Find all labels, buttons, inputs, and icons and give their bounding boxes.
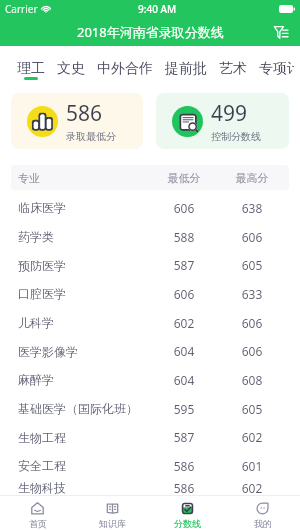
button[interactable]: 临床医学 [11, 193, 289, 222]
staticText: 604 [150, 372, 218, 388]
staticText: 638 [218, 200, 286, 216]
staticText: Carrier [5, 2, 38, 16]
button[interactable]: 提前批 [165, 46, 207, 82]
staticText: 提前批 [165, 60, 207, 78]
staticText: 儿科学 [18, 315, 150, 330]
staticText: 602 [150, 315, 218, 331]
button[interactable]: 生物科技 [11, 480, 289, 495]
staticText: 知识库 [99, 518, 126, 529]
staticText: 633 [218, 286, 286, 302]
staticText: 586 [150, 480, 218, 495]
button[interactable]: 我的 [225, 496, 300, 530]
staticText: 基础医学（国际化班） [18, 401, 150, 416]
staticText: 首页 [29, 518, 47, 529]
button[interactable]: 医学影像学 [11, 337, 289, 365]
button[interactable]: 预防医学 [11, 251, 289, 279]
staticText: 控制分数线 [211, 130, 261, 143]
button[interactable]: 生物工程 [11, 423, 289, 451]
button[interactable]: 基础医学（国际化班） [11, 394, 289, 423]
staticText: 预防医学 [18, 258, 150, 273]
button[interactable]: 理工 [17, 46, 45, 82]
button[interactable]: 儿科学 [11, 308, 289, 337]
staticText: 麻醉学 [18, 372, 150, 387]
staticText: 录取最低分 [66, 130, 116, 143]
staticText: 我的 [254, 518, 272, 529]
staticText: 生物科技 [18, 480, 150, 495]
button[interactable]: 文史 [57, 46, 85, 82]
staticText: 最低分 [150, 171, 218, 185]
staticText: 安全工程 [18, 458, 150, 473]
staticText: 2018年河南省录取分数线 [77, 23, 224, 41]
button[interactable]: 药学类 [11, 222, 289, 251]
staticText: 606 [218, 315, 286, 331]
staticText: 最高分 [218, 171, 286, 185]
staticText: 586 [150, 458, 218, 474]
staticText: 605 [218, 401, 286, 417]
staticText: 606 [218, 229, 286, 245]
button[interactable]: 安全工程 [11, 451, 289, 480]
staticText: 587 [150, 257, 218, 273]
staticText: 602 [218, 480, 286, 495]
staticText: 587 [150, 429, 218, 445]
staticText: 605 [218, 257, 286, 273]
staticText: 499 [211, 99, 248, 128]
staticText: 中外合作 [97, 60, 153, 78]
staticText: 604 [150, 343, 218, 359]
staticText: 606 [150, 200, 218, 216]
button[interactable]: Filter [270, 21, 292, 43]
button[interactable]: 麻醉学 [11, 365, 289, 394]
staticText: 602 [218, 429, 286, 445]
staticText: 586 [66, 99, 103, 128]
staticText: 588 [150, 229, 218, 245]
button[interactable]: 艺术 [219, 46, 247, 82]
staticText: 艺术 [219, 60, 247, 78]
staticText: 专业 [18, 171, 150, 185]
staticText: 临床医学 [18, 200, 150, 215]
button[interactable]: 首页 [0, 496, 75, 530]
button[interactable]: 499 [156, 93, 289, 149]
button[interactable]: 586 [11, 93, 143, 149]
staticText: 608 [218, 372, 286, 388]
staticText: 口腔医学 [18, 286, 150, 301]
button[interactable]: 知识库 [75, 496, 150, 530]
staticText: 医学影像学 [18, 344, 150, 359]
staticText: 595 [150, 401, 218, 417]
staticText: 理工 [17, 60, 45, 78]
staticText: 9:40 AM [138, 2, 177, 16]
staticText: 文史 [57, 60, 85, 78]
button[interactable]: 口腔医学 [11, 279, 289, 308]
staticText: 分数线 [174, 518, 201, 529]
staticText: 专项计划 [259, 60, 294, 78]
button[interactable]: 中外合作 [97, 46, 153, 82]
button[interactable]: 专项计划 [259, 46, 294, 82]
staticText: 药学类 [18, 229, 150, 244]
staticText: 601 [218, 458, 286, 474]
button[interactable]: 分数线 [150, 496, 225, 530]
staticText: 606 [150, 286, 218, 302]
staticText: 606 [218, 343, 286, 359]
staticText: 生物工程 [18, 430, 150, 445]
